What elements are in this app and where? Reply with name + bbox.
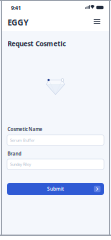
staticText: Submit (47, 186, 64, 192)
staticText: Request Cosmetic (7, 39, 65, 48)
staticText: Serum Buffer (10, 137, 35, 143)
button[interactable]: Sunday Riley (7, 159, 104, 170)
staticText: EGGY (7, 17, 28, 28)
button[interactable]: Submit (7, 183, 104, 195)
staticText: Brand (7, 150, 21, 157)
staticText: Sunday Riley (10, 162, 31, 167)
staticText: 9:41 (11, 4, 21, 11)
button[interactable]: Menu (91, 15, 103, 27)
button[interactable]: Serum Buffer (7, 135, 104, 145)
staticText: Cosmetic Name (7, 126, 42, 132)
